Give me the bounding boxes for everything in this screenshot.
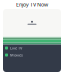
staticText: Movies [10, 52, 23, 58]
staticText: Live TV [10, 45, 22, 51]
button[interactable]: Movies [3, 51, 61, 58]
button[interactable]: Live TV [3, 44, 61, 51]
staticText: Enjoy TV Now [16, 1, 48, 8]
